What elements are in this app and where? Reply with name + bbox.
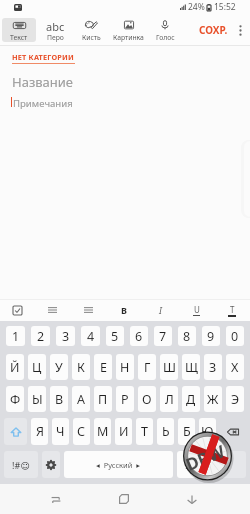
button[interactable]: Х [226, 354, 244, 380]
button[interactable]: Щ [182, 354, 200, 380]
button[interactable]: Ш [160, 354, 178, 380]
button[interactable]: Checklist [0, 299, 35, 321]
button[interactable]: 7 [154, 326, 172, 346]
button[interactable]: Underline [178, 299, 214, 321]
staticText: U [194, 304, 200, 315]
button[interactable]: Ф [6, 386, 24, 412]
staticText: Ю [201, 423, 214, 440]
button[interactable]: ◂ Русский ▸ [64, 451, 173, 478]
button[interactable]: К [72, 354, 90, 380]
button[interactable]: 4 [81, 326, 100, 346]
staticText: Текст [10, 33, 28, 42]
button[interactable]: Текст [2, 18, 36, 42]
staticText: 2 [37, 328, 45, 345]
button[interactable]: Г [138, 354, 156, 380]
button[interactable]: Strikethrough [214, 299, 250, 321]
staticText: З [209, 359, 217, 376]
staticText: 4 [87, 328, 95, 345]
button[interactable]: Ю [199, 418, 216, 445]
staticText: Кисть [82, 33, 101, 42]
button[interactable]: Л [160, 386, 178, 412]
button[interactable]: Я [31, 418, 48, 445]
button[interactable]: П [94, 386, 112, 412]
button[interactable]: 0 [226, 326, 244, 346]
button[interactable]: 5 [106, 326, 124, 346]
staticText: Ч [56, 423, 65, 440]
staticText: . [185, 458, 188, 472]
staticText: Х [231, 359, 239, 376]
button[interactable]: Т [136, 418, 153, 445]
button[interactable]: Backspace [220, 418, 246, 445]
button[interactable]: Bold [106, 299, 142, 321]
button[interactable]: Shift [4, 418, 27, 445]
staticText: DRW [182, 439, 229, 476]
button[interactable]: Д [182, 386, 200, 412]
button[interactable]: Картинка [110, 18, 146, 42]
staticText: Э [231, 391, 240, 408]
staticText: НЕТ КАТЕГОРИИ [12, 52, 75, 62]
staticText: К [77, 359, 85, 376]
button[interactable]: Numbered list [70, 299, 106, 321]
staticText: 3 [62, 328, 70, 345]
staticText: Ф [10, 391, 21, 408]
staticText: T [230, 304, 235, 315]
staticText: Т [141, 423, 148, 440]
button[interactable]: 8 [178, 326, 196, 346]
staticText: Я [36, 423, 44, 440]
button[interactable]: !#☺ [4, 451, 38, 478]
button[interactable]: abc [38, 18, 72, 42]
button[interactable]: З [204, 354, 222, 380]
button[interactable]: More options [231, 14, 250, 46]
button[interactable]: 2 [31, 326, 50, 346]
button[interactable]: Е [94, 354, 112, 380]
button[interactable]: Settings [42, 451, 60, 478]
staticText: Ж [207, 391, 219, 408]
staticText: Ь [162, 423, 170, 440]
button[interactable]: Н [116, 354, 134, 380]
button[interactable]: Голос [148, 18, 182, 42]
button[interactable]: Р [116, 386, 134, 412]
staticText: Картинка [113, 33, 144, 42]
staticText: Название [12, 73, 74, 91]
staticText: 8 [183, 328, 191, 345]
button[interactable]: Ц [28, 354, 46, 380]
button[interactable]: С [73, 418, 90, 445]
button[interactable]: И [115, 418, 132, 445]
staticText: Ы [32, 391, 43, 408]
button[interactable]: 3 [56, 326, 75, 346]
staticText: Примечания [13, 97, 73, 110]
staticText: Р [121, 391, 129, 408]
button[interactable]: Ы [28, 386, 46, 412]
button[interactable]: А [72, 386, 90, 412]
button[interactable]: Ж [204, 386, 222, 412]
button[interactable]: О [138, 386, 156, 412]
button[interactable]: Б [178, 418, 195, 445]
staticText: О [142, 391, 152, 408]
button[interactable]: СОХР. [196, 14, 231, 46]
staticText: С [77, 423, 86, 440]
button[interactable]: Recents [22, 484, 90, 514]
button[interactable]: Кисть [74, 18, 108, 42]
staticText: B [121, 304, 127, 316]
button[interactable]: Home [90, 484, 158, 514]
staticText: П [98, 391, 108, 408]
button[interactable]: Э [226, 386, 244, 412]
button[interactable]: 1 [6, 326, 25, 346]
staticText: СОХР. [199, 23, 228, 37]
button[interactable]: 9 [202, 326, 220, 346]
button[interactable]: Italic [142, 299, 178, 321]
button[interactable]: В [50, 386, 68, 412]
button[interactable]: Ь [157, 418, 174, 445]
staticText: 24% [188, 1, 205, 13]
staticText: Ц [32, 359, 42, 376]
staticText: ◂ Русский ▸ [96, 460, 141, 470]
button[interactable]: . [177, 451, 196, 478]
button[interactable]: 6 [130, 326, 148, 346]
button[interactable]: Hide keyboard [158, 484, 226, 514]
button[interactable]: У [50, 354, 68, 380]
button[interactable]: М [94, 418, 111, 445]
button[interactable]: Й [6, 354, 24, 380]
button[interactable]: Enter [200, 451, 246, 478]
button[interactable]: Ч [52, 418, 69, 445]
button[interactable]: Bulleted list [35, 299, 70, 321]
